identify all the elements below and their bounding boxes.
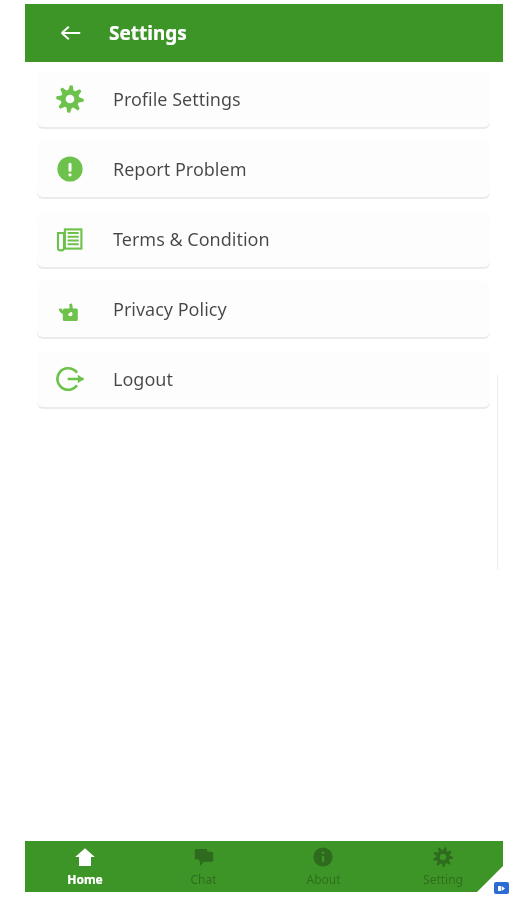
button[interactable]: Profile Settings bbox=[37, 71, 490, 127]
button[interactable]: Report Problem bbox=[37, 141, 490, 197]
staticText: Logout bbox=[113, 367, 173, 392]
staticText: Privacy Policy bbox=[113, 297, 227, 322]
staticText: Setting bbox=[423, 871, 463, 887]
button[interactable]: Terms & Condition bbox=[37, 211, 490, 267]
button[interactable]: Back bbox=[49, 11, 93, 55]
staticText: Terms & Condition bbox=[113, 227, 270, 252]
button[interactable]: About bbox=[263, 841, 383, 892]
button[interactable]: Home bbox=[25, 841, 144, 892]
staticText: Report Problem bbox=[113, 157, 247, 182]
staticText: About bbox=[306, 871, 341, 887]
button[interactable]: Chat bbox=[144, 841, 263, 892]
staticText: Home bbox=[67, 871, 103, 887]
staticText: Profile Settings bbox=[113, 87, 241, 112]
staticText: Chat bbox=[190, 871, 217, 887]
button[interactable]: Logout bbox=[37, 351, 490, 407]
button[interactable]: Privacy Policy bbox=[37, 281, 490, 337]
button[interactable]: Setting bbox=[383, 841, 503, 892]
staticText: Settings bbox=[109, 20, 187, 46]
